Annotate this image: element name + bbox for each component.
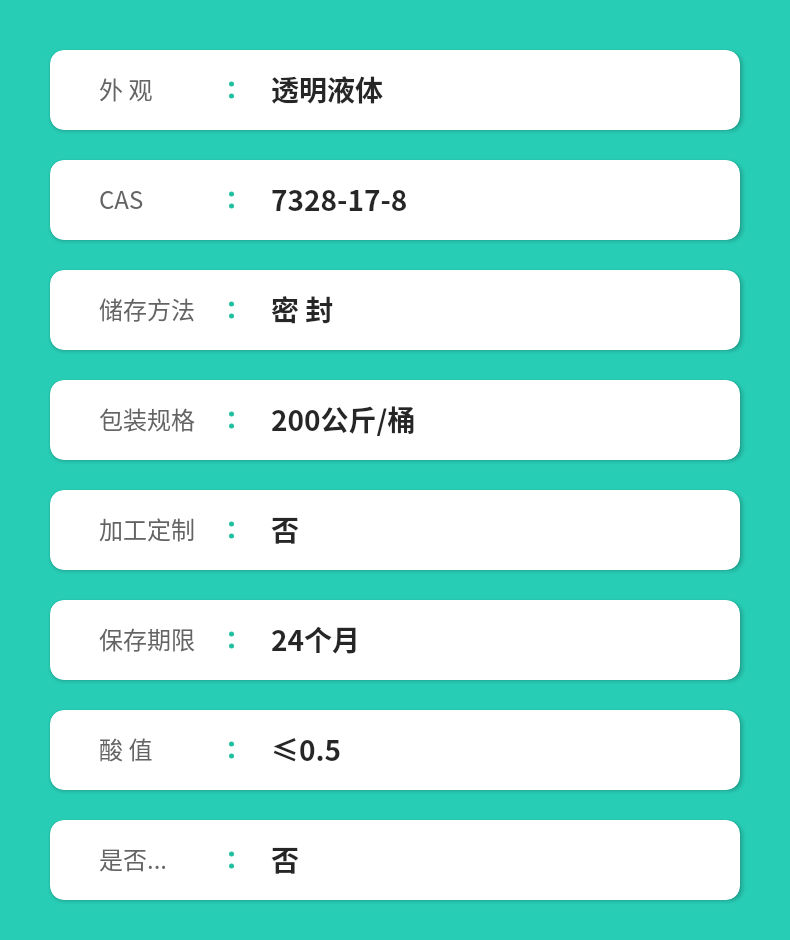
staticText: 包装规格 <box>99 401 195 436</box>
button[interactable]: 包装规格 <box>50 380 740 460</box>
staticText: 外 观 <box>99 71 153 106</box>
staticText: 否 <box>271 509 300 550</box>
button[interactable]: 储存方法 <box>50 270 740 350</box>
staticText: ≤0.5 <box>271 729 342 770</box>
staticText: 否 <box>271 839 300 880</box>
staticText: 加工定制 <box>99 511 195 546</box>
staticText: 保存期限 <box>99 621 195 656</box>
staticText: CAS <box>99 181 144 216</box>
staticText: 24个月 <box>271 619 361 660</box>
staticText: 密 封 <box>271 289 334 330</box>
button[interactable]: 保存期限 <box>50 600 740 680</box>
button[interactable]: 酸 值 <box>50 710 740 790</box>
button[interactable]: 是否... <box>50 820 740 900</box>
staticText: 7328-17-8 <box>271 179 408 220</box>
staticText: 透明液体 <box>271 69 384 110</box>
staticText: 储存方法 <box>99 291 195 326</box>
staticText: 200公斤/桶 <box>271 399 416 440</box>
staticText: 酸 值 <box>99 731 153 766</box>
staticText: 是否... <box>99 841 168 876</box>
button[interactable]: CAS <box>50 160 740 240</box>
button[interactable]: 外 观 <box>50 50 740 130</box>
button[interactable]: 加工定制 <box>50 490 740 570</box>
